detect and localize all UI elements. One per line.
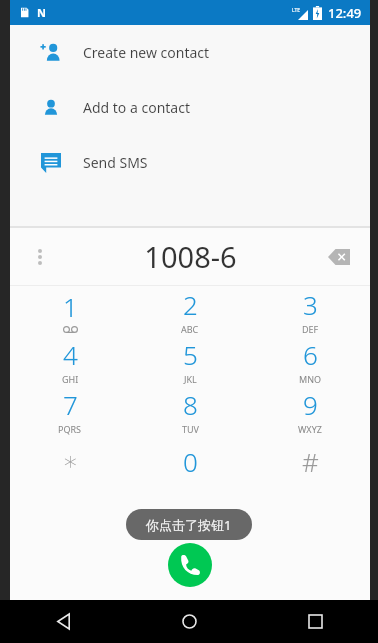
button[interactable]: 3 xyxy=(250,286,370,336)
staticText: Send SMS xyxy=(83,153,148,172)
staticText: DEF xyxy=(302,323,319,335)
button[interactable]: 4 xyxy=(10,336,130,386)
staticText: Add to a contact xyxy=(83,98,190,117)
button[interactable]: Home xyxy=(126,600,252,643)
staticText: JKL xyxy=(184,373,197,385)
button[interactable]: Recents xyxy=(252,600,378,643)
staticText: MNO xyxy=(299,373,322,385)
staticText: 你点击了按钮1 xyxy=(146,516,232,534)
staticText: N xyxy=(37,5,46,20)
staticText: WXYZ xyxy=(298,423,322,435)
staticText: TUV xyxy=(182,423,199,435)
button[interactable]: 0 xyxy=(130,436,250,486)
staticText: PQRS xyxy=(58,423,82,435)
staticText: 1 xyxy=(63,289,78,324)
button[interactable]: 1 xyxy=(10,286,130,336)
button[interactable]: Back xyxy=(0,600,126,643)
staticText: 8 xyxy=(183,387,198,422)
staticText: ABC xyxy=(181,323,199,335)
button[interactable]: Add to a contact xyxy=(10,80,370,135)
staticText: LTE xyxy=(292,7,301,14)
button[interactable]: More options xyxy=(28,245,52,269)
button[interactable]: 5 xyxy=(130,336,250,386)
staticText: # xyxy=(302,444,319,479)
staticText: Create new contact xyxy=(83,43,210,62)
staticText: ∗ xyxy=(62,446,79,476)
staticText: 9 xyxy=(303,387,318,422)
button[interactable]: 7 xyxy=(10,386,130,436)
staticText: 12:49 xyxy=(328,4,362,22)
button[interactable]: Send SMS xyxy=(10,135,370,190)
staticText: 0 xyxy=(183,444,198,479)
staticText: 3 xyxy=(303,287,318,322)
button[interactable]: 9 xyxy=(250,386,370,436)
button[interactable]: Backspace xyxy=(324,242,354,272)
button[interactable]: ∗ xyxy=(10,436,130,486)
staticText: 2 xyxy=(183,287,198,322)
button[interactable]: 8 xyxy=(130,386,250,436)
staticText: 5 xyxy=(183,337,198,372)
button[interactable]: # xyxy=(250,436,370,486)
staticText: 4 xyxy=(63,337,78,372)
button[interactable]: 2 xyxy=(130,286,250,336)
button[interactable]: 6 xyxy=(250,336,370,386)
staticText: GHI xyxy=(62,373,79,385)
staticText: 6 xyxy=(303,337,318,372)
staticText: 1008-6 xyxy=(144,237,237,276)
staticText: 7 xyxy=(63,387,78,422)
button[interactable]: Create new contact xyxy=(10,25,370,80)
button[interactable]: Call xyxy=(168,543,212,587)
